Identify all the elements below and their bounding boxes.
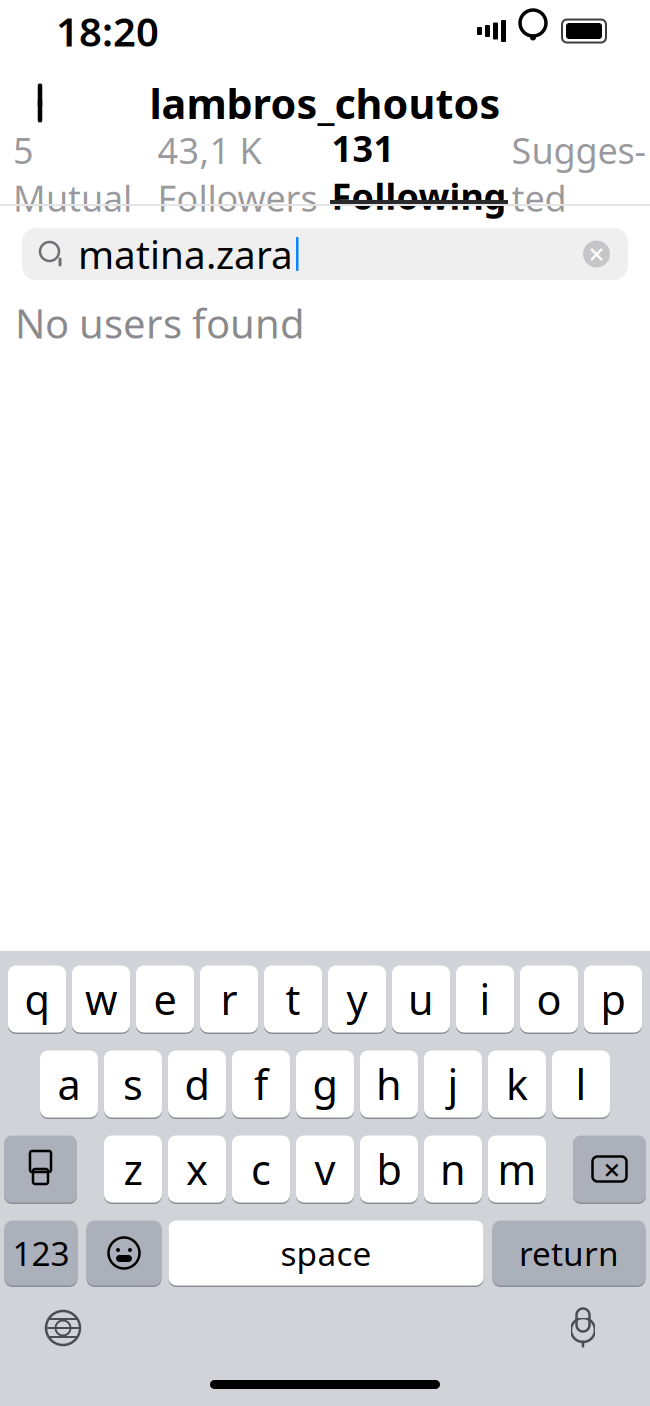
staticText: l — [575, 1057, 586, 1111]
button[interactable]: m — [488, 1134, 546, 1204]
staticText: Suggested — [511, 126, 646, 222]
button[interactable]: v — [296, 1134, 354, 1204]
button[interactable]: p — [584, 964, 642, 1034]
button[interactable]: Suggested — [508, 144, 650, 204]
button[interactable]: 131 Following — [330, 144, 508, 204]
button[interactable]: c — [232, 1134, 290, 1204]
staticText: lambros_choutos — [149, 76, 500, 130]
staticText: return — [519, 1231, 619, 1275]
staticText: d — [184, 1057, 209, 1111]
staticText: j — [447, 1057, 458, 1111]
staticText: 123 — [12, 1231, 69, 1275]
button[interactable]: a — [40, 1049, 98, 1119]
button[interactable]: f — [232, 1049, 290, 1119]
button[interactable]: q — [8, 964, 66, 1034]
staticText: × — [588, 235, 604, 273]
staticText: t — [285, 972, 300, 1026]
button[interactable]: return — [492, 1219, 645, 1287]
staticText: u — [408, 972, 434, 1026]
button[interactable]: 123 — [4, 1219, 77, 1287]
button[interactable]: Emoji — [86, 1219, 161, 1287]
staticText: y — [346, 972, 367, 1026]
button[interactable]: y — [328, 964, 386, 1034]
button[interactable]: Next keyboard — [28, 1298, 98, 1358]
staticText: 18:20 — [56, 4, 159, 57]
staticText: o — [536, 972, 561, 1026]
staticText: z — [123, 1142, 142, 1196]
staticText: n — [440, 1142, 466, 1196]
button[interactable]: l — [552, 1049, 610, 1119]
button[interactable]: i — [456, 964, 514, 1034]
button[interactable]: k — [488, 1049, 546, 1119]
button[interactable]: j — [424, 1049, 482, 1119]
staticText: No users found — [15, 296, 305, 349]
staticText: matina.zara — [78, 228, 293, 280]
button[interactable]: n — [424, 1134, 482, 1204]
staticText: 5 Mutual — [13, 126, 132, 222]
button[interactable]: x — [168, 1134, 226, 1204]
staticText: h — [376, 1057, 402, 1111]
button[interactable]: u — [392, 964, 450, 1034]
staticText: s — [123, 1057, 143, 1111]
staticText: g — [312, 1057, 337, 1111]
staticText: e — [153, 972, 176, 1026]
button[interactable]: z — [104, 1134, 162, 1204]
staticText: p — [600, 972, 625, 1026]
button[interactable]: e — [136, 964, 194, 1034]
button[interactable]: d — [168, 1049, 226, 1119]
button[interactable]: Delete — [573, 1134, 646, 1204]
staticText: 43,1 K Followers — [157, 126, 317, 222]
staticText: r — [220, 972, 237, 1026]
staticText: c — [251, 1142, 271, 1196]
staticText: × — [603, 1149, 620, 1188]
button[interactable]: r — [200, 964, 258, 1034]
staticText: 131 Following — [331, 124, 506, 220]
button[interactable]: 43,1 K Followers — [145, 144, 330, 204]
button[interactable]: h — [360, 1049, 418, 1119]
staticText: w — [85, 972, 117, 1026]
button[interactable]: b — [360, 1134, 418, 1204]
staticText: k — [506, 1057, 528, 1111]
staticText: q — [24, 972, 49, 1026]
staticText: m — [497, 1142, 536, 1196]
staticText: f — [254, 1057, 268, 1111]
staticText: a — [57, 1057, 80, 1111]
button[interactable]: Shift — [4, 1134, 77, 1204]
staticText: v — [314, 1142, 335, 1196]
button[interactable]: matina.zara — [22, 228, 628, 280]
button[interactable]: 5 Mutual — [0, 144, 145, 204]
staticText: x — [186, 1142, 208, 1196]
button[interactable]: o — [520, 964, 578, 1034]
button[interactable]: t — [264, 964, 322, 1034]
button[interactable]: g — [296, 1049, 354, 1119]
button[interactable]: w — [72, 964, 130, 1034]
staticText: b — [376, 1142, 401, 1196]
staticText: i — [479, 972, 490, 1026]
staticText: space — [280, 1231, 371, 1275]
button[interactable]: s — [104, 1049, 162, 1119]
button[interactable]: Back — [8, 71, 72, 135]
button[interactable]: Dictate — [548, 1298, 618, 1358]
button[interactable]: space — [168, 1219, 483, 1287]
